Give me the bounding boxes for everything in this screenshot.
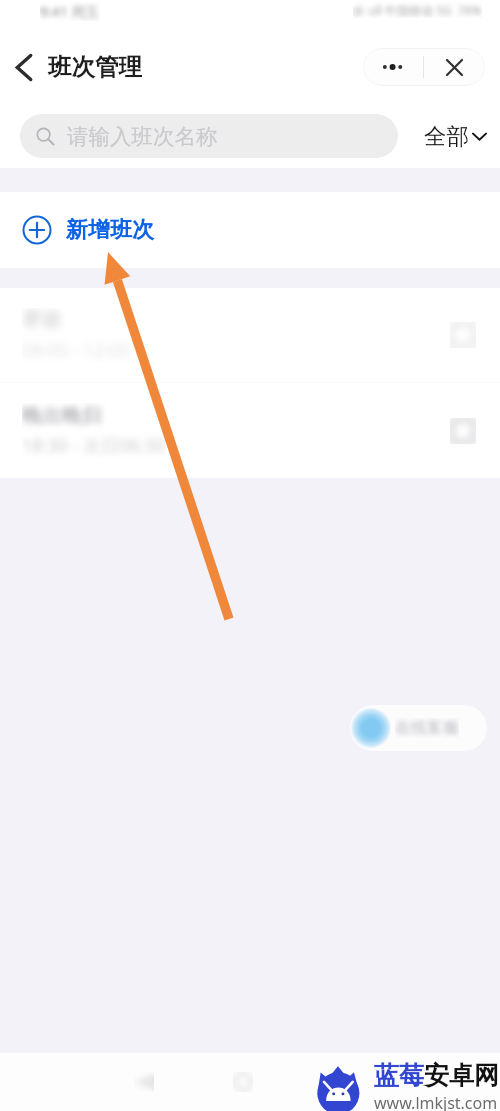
staticText: 请输入班次名称 [67, 123, 218, 150]
button[interactable]: 早班 [0, 288, 500, 382]
staticText: 早班 [22, 308, 62, 333]
button[interactable]: Edit shift [446, 318, 480, 352]
button[interactable]: More options [363, 48, 423, 86]
button[interactable]: 新增班次 [0, 192, 500, 268]
staticText: 新增班次 [66, 216, 154, 244]
staticText: 安卓网 [424, 1060, 499, 1091]
staticText: 蓝莓 [374, 1060, 424, 1091]
button[interactable]: Back [129, 1053, 159, 1111]
button[interactable]: Back [5, 48, 43, 86]
staticText: 全部 [424, 122, 469, 150]
button[interactable]: Home [228, 1053, 258, 1111]
button[interactable]: Edit shift [446, 414, 480, 448]
button[interactable]: 全部 [424, 114, 487, 158]
button[interactable]: 在线客服 [350, 705, 487, 751]
staticText: 晚出晚归 [22, 403, 102, 428]
staticText: 在线客服 [395, 718, 459, 738]
staticText: www.lmkjst.com [374, 1092, 498, 1111]
staticText: 班次管理 [48, 52, 142, 82]
button[interactable]: 晚出晚归 [0, 383, 500, 478]
button[interactable]: Close [424, 48, 485, 86]
staticText: 18:30 - 次日06:30 [22, 433, 166, 458]
staticText: 全 ull 中国移动 5G 76% [353, 2, 482, 18]
staticText: 9:41 周五 [40, 2, 100, 21]
button[interactable]: 请输入班次名称 [20, 114, 398, 158]
